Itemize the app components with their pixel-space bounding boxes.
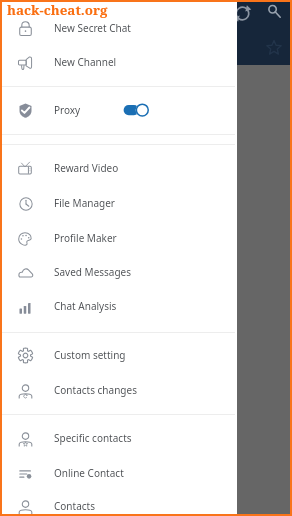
button[interactable]: New Secret Chat <box>0 11 235 46</box>
staticText: Proxy <box>54 103 81 117</box>
staticText: Reward Video <box>54 161 119 175</box>
button[interactable]: Profile Maker <box>0 221 235 256</box>
button[interactable]: Saved Messages <box>0 255 235 290</box>
button[interactable]: Specific contacts <box>0 421 235 456</box>
button[interactable]: File Manager <box>0 186 235 221</box>
button[interactable]: Search <box>265 3 284 22</box>
button[interactable]: Reward Video <box>0 151 235 186</box>
staticText: New Secret Chat <box>54 21 131 35</box>
button[interactable]: Custom setting <box>0 338 235 373</box>
button[interactable]: Chat Analysis <box>0 289 235 324</box>
staticText: Chat Analysis <box>54 299 117 313</box>
button[interactable]: Online Contact <box>0 456 235 491</box>
button[interactable]: Contacts <box>0 489 235 516</box>
staticText: Custom setting <box>54 348 126 362</box>
staticText: Saved Messages <box>54 265 132 279</box>
staticText: New Channel <box>54 55 117 69</box>
button[interactable]: Refresh <box>233 4 252 23</box>
button[interactable]: Proxy toggle <box>120 99 154 121</box>
button[interactable]: New Channel <box>0 45 235 80</box>
button[interactable]: Contacts changes <box>0 373 235 408</box>
staticText: File Manager <box>54 196 115 210</box>
button[interactable]: Proxy <box>0 93 235 128</box>
staticText: Contacts changes <box>54 383 137 397</box>
staticText: Online Contact <box>54 466 124 480</box>
staticText: Specific contacts <box>54 431 132 445</box>
staticText: hack-cheat.org <box>7 1 108 19</box>
staticText: Profile Maker <box>54 231 117 245</box>
staticText: Contacts <box>54 499 95 513</box>
